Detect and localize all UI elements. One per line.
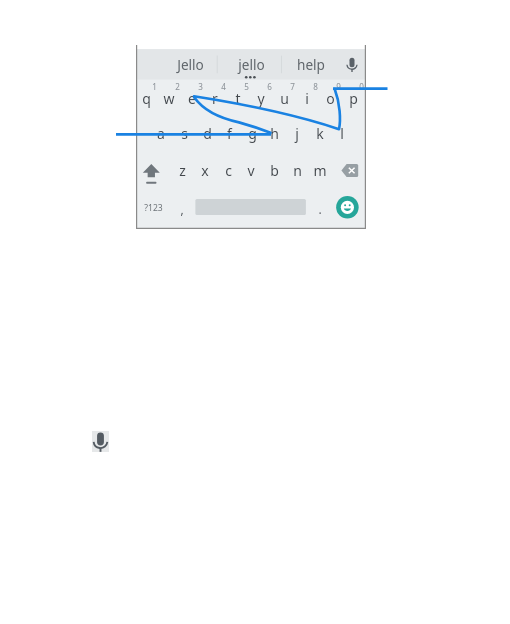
- button[interactable]: [150, 117, 173, 154]
- button[interactable]: Backspace: [335, 154, 366, 191]
- button[interactable]: Emoji: [333, 191, 361, 228]
- button[interactable]: Jello: [160, 49, 220, 80]
- staticText: z: [179, 161, 186, 180]
- button[interactable]: [135, 80, 158, 117]
- staticText: jello: [238, 55, 265, 74]
- staticText: r: [212, 89, 218, 108]
- staticText: f: [227, 124, 232, 143]
- staticText: g: [248, 124, 257, 143]
- button[interactable]: [217, 154, 240, 191]
- button[interactable]: [195, 191, 307, 228]
- button[interactable]: [309, 191, 331, 228]
- button[interactable]: [240, 117, 263, 154]
- staticText: m: [313, 161, 327, 180]
- staticText: j: [295, 124, 299, 143]
- staticText: v: [247, 161, 255, 180]
- button[interactable]: [263, 154, 286, 191]
- button[interactable]: [158, 80, 181, 117]
- button[interactable]: Microphone: [92, 431, 109, 452]
- button[interactable]: [136, 191, 170, 228]
- staticText: ,: [180, 201, 184, 217]
- button[interactable]: Voice typing: [338, 48, 366, 79]
- staticText: 4: [221, 81, 226, 92]
- button[interactable]: [308, 154, 331, 191]
- button[interactable]: [273, 80, 296, 117]
- button[interactable]: [342, 80, 365, 117]
- staticText: 5: [244, 81, 249, 92]
- staticText: b: [270, 161, 279, 180]
- staticText: t: [235, 89, 241, 108]
- button[interactable]: [171, 191, 193, 228]
- staticText: q: [142, 89, 151, 108]
- button[interactable]: [286, 117, 309, 154]
- staticText: y: [257, 89, 265, 108]
- staticText: c: [225, 161, 232, 180]
- button[interactable]: [296, 80, 319, 117]
- button[interactable]: [331, 117, 354, 154]
- staticText: x: [201, 161, 209, 180]
- staticText: l: [340, 124, 344, 143]
- staticText: Jello: [177, 55, 204, 74]
- staticText: 2: [175, 81, 180, 92]
- button[interactable]: [195, 117, 218, 154]
- button[interactable]: [181, 80, 204, 117]
- button[interactable]: Shift: [136, 154, 167, 191]
- staticText: a: [157, 124, 165, 143]
- staticText: d: [203, 124, 212, 143]
- button[interactable]: [171, 154, 194, 191]
- staticText: 8: [313, 81, 318, 92]
- button[interactable]: [240, 154, 263, 191]
- button[interactable]: [308, 117, 331, 154]
- staticText: n: [293, 161, 302, 180]
- staticText: 9: [336, 81, 341, 92]
- staticText: h: [270, 124, 279, 143]
- staticText: p: [349, 89, 358, 108]
- button[interactable]: [263, 117, 286, 154]
- button[interactable]: [285, 154, 308, 191]
- staticText: i: [305, 89, 309, 108]
- staticText: 1: [152, 81, 157, 92]
- staticText: u: [280, 89, 289, 108]
- button[interactable]: [227, 80, 250, 117]
- staticText: .: [318, 201, 322, 217]
- button[interactable]: help: [281, 49, 341, 80]
- staticText: e: [188, 89, 196, 108]
- staticText: 6: [267, 81, 272, 92]
- button[interactable]: [218, 117, 241, 154]
- staticText: s: [181, 124, 188, 143]
- staticText: w: [163, 89, 175, 108]
- staticText: 0: [359, 81, 364, 92]
- staticText: ?123: [144, 202, 163, 214]
- button[interactable]: [250, 80, 273, 117]
- button[interactable]: [319, 80, 342, 117]
- button[interactable]: [204, 80, 227, 117]
- staticText: o: [326, 89, 335, 108]
- staticText: 7: [290, 81, 295, 92]
- staticText: k: [316, 124, 324, 143]
- staticText: 3: [198, 81, 203, 92]
- button[interactable]: [173, 117, 196, 154]
- staticText: help: [297, 55, 325, 74]
- button[interactable]: [194, 154, 217, 191]
- button[interactable]: jello: [221, 49, 281, 80]
